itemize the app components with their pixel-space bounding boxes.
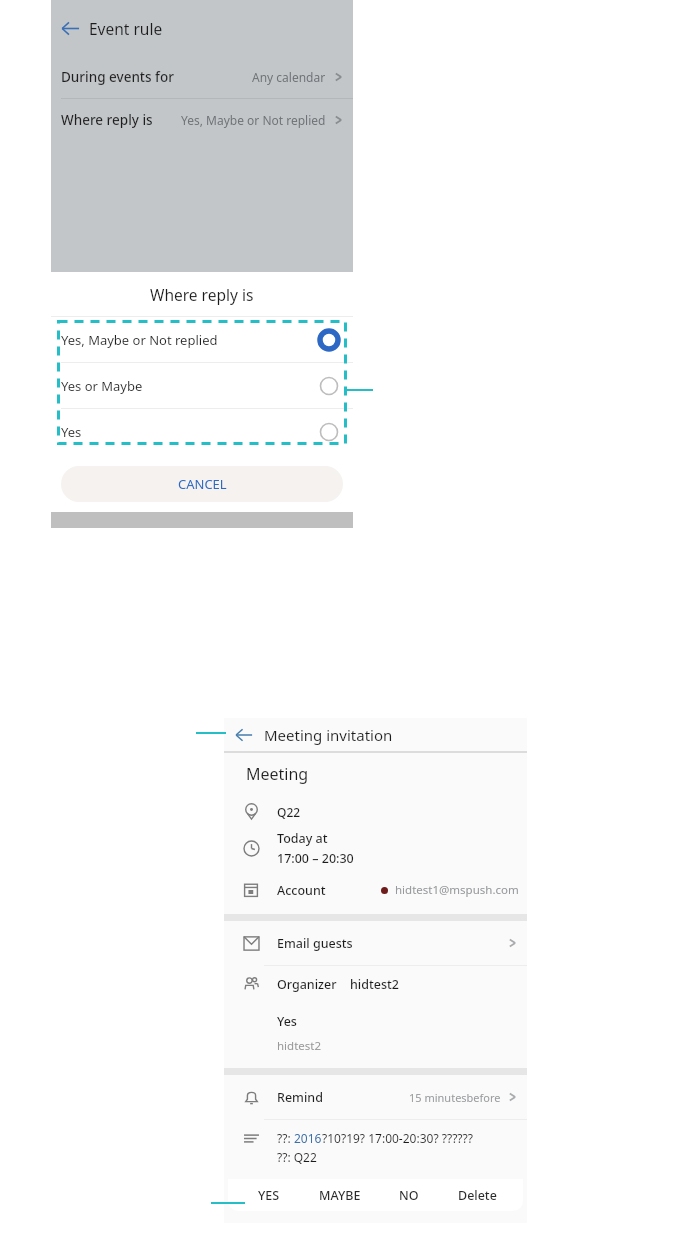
button[interactable]: Back [224, 718, 527, 751]
button[interactable]: Back [224, 718, 264, 751]
button[interactable]: Yes [61, 409, 339, 454]
staticText: Yes [277, 1013, 297, 1030]
staticText: Yes [61, 423, 82, 441]
button[interactable]: Q22 [238, 803, 517, 820]
staticText: Account [277, 882, 326, 899]
staticText: During events for [61, 68, 174, 86]
button[interactable]: Back [51, 0, 89, 56]
staticText: ?10?19? 17:00-20:30? ?????? [322, 1130, 473, 1146]
staticText: MAYBE [319, 1187, 361, 1204]
button[interactable]: Remind [238, 1075, 517, 1119]
staticText: hidtest1@mspush.com [395, 882, 519, 898]
button[interactable]: Today at [238, 830, 517, 867]
button[interactable]: CANCEL [61, 466, 343, 502]
staticText: Meeting [246, 763, 309, 785]
staticText: Meeting invitation [264, 725, 393, 745]
staticText: YES [258, 1187, 280, 1204]
staticText: Yes, Maybe or Not replied [61, 331, 218, 349]
button[interactable]: YES [254, 1184, 284, 1207]
button[interactable]: Account [238, 877, 519, 903]
staticText: Today at [277, 830, 328, 847]
button[interactable]: Where reply is [61, 99, 343, 141]
staticText: Q22 [277, 804, 301, 820]
button[interactable]: NO [395, 1184, 423, 1207]
button[interactable]: Email guests [238, 921, 517, 965]
button[interactable]: Yes, Maybe or Not replied [61, 317, 339, 362]
staticText: Yes, Maybe or Not replied [181, 112, 326, 128]
staticText: ??: [277, 1130, 294, 1146]
staticText: ??: Q22 [277, 1149, 317, 1165]
staticText: Yes or Maybe [61, 377, 143, 395]
button[interactable]: Delete [454, 1184, 501, 1207]
staticText: Remind [277, 1089, 323, 1106]
staticText: Organizer [277, 976, 337, 993]
staticText: hidtest2 [277, 1038, 322, 1054]
staticText: CANCEL [178, 475, 227, 493]
staticText: NO [399, 1187, 419, 1204]
staticText: 15 minutesbefore [409, 1090, 501, 1105]
staticText: Email guests [277, 935, 353, 952]
button[interactable]: Yes or Maybe [61, 363, 339, 408]
staticText: 17:00 – 20:30 [277, 850, 354, 867]
staticText: Where reply is [150, 284, 254, 305]
button[interactable]: MAYBE [315, 1184, 365, 1207]
staticText: Event rule [89, 18, 163, 39]
staticText: Any calendar [252, 69, 326, 85]
button[interactable]: Back [51, 0, 353, 56]
button[interactable]: During events for [61, 56, 343, 98]
staticText: 2016 [294, 1130, 322, 1146]
staticText: Delete [458, 1187, 497, 1204]
staticText: hidtest2 [350, 976, 399, 993]
staticText: Where reply is [61, 111, 153, 129]
